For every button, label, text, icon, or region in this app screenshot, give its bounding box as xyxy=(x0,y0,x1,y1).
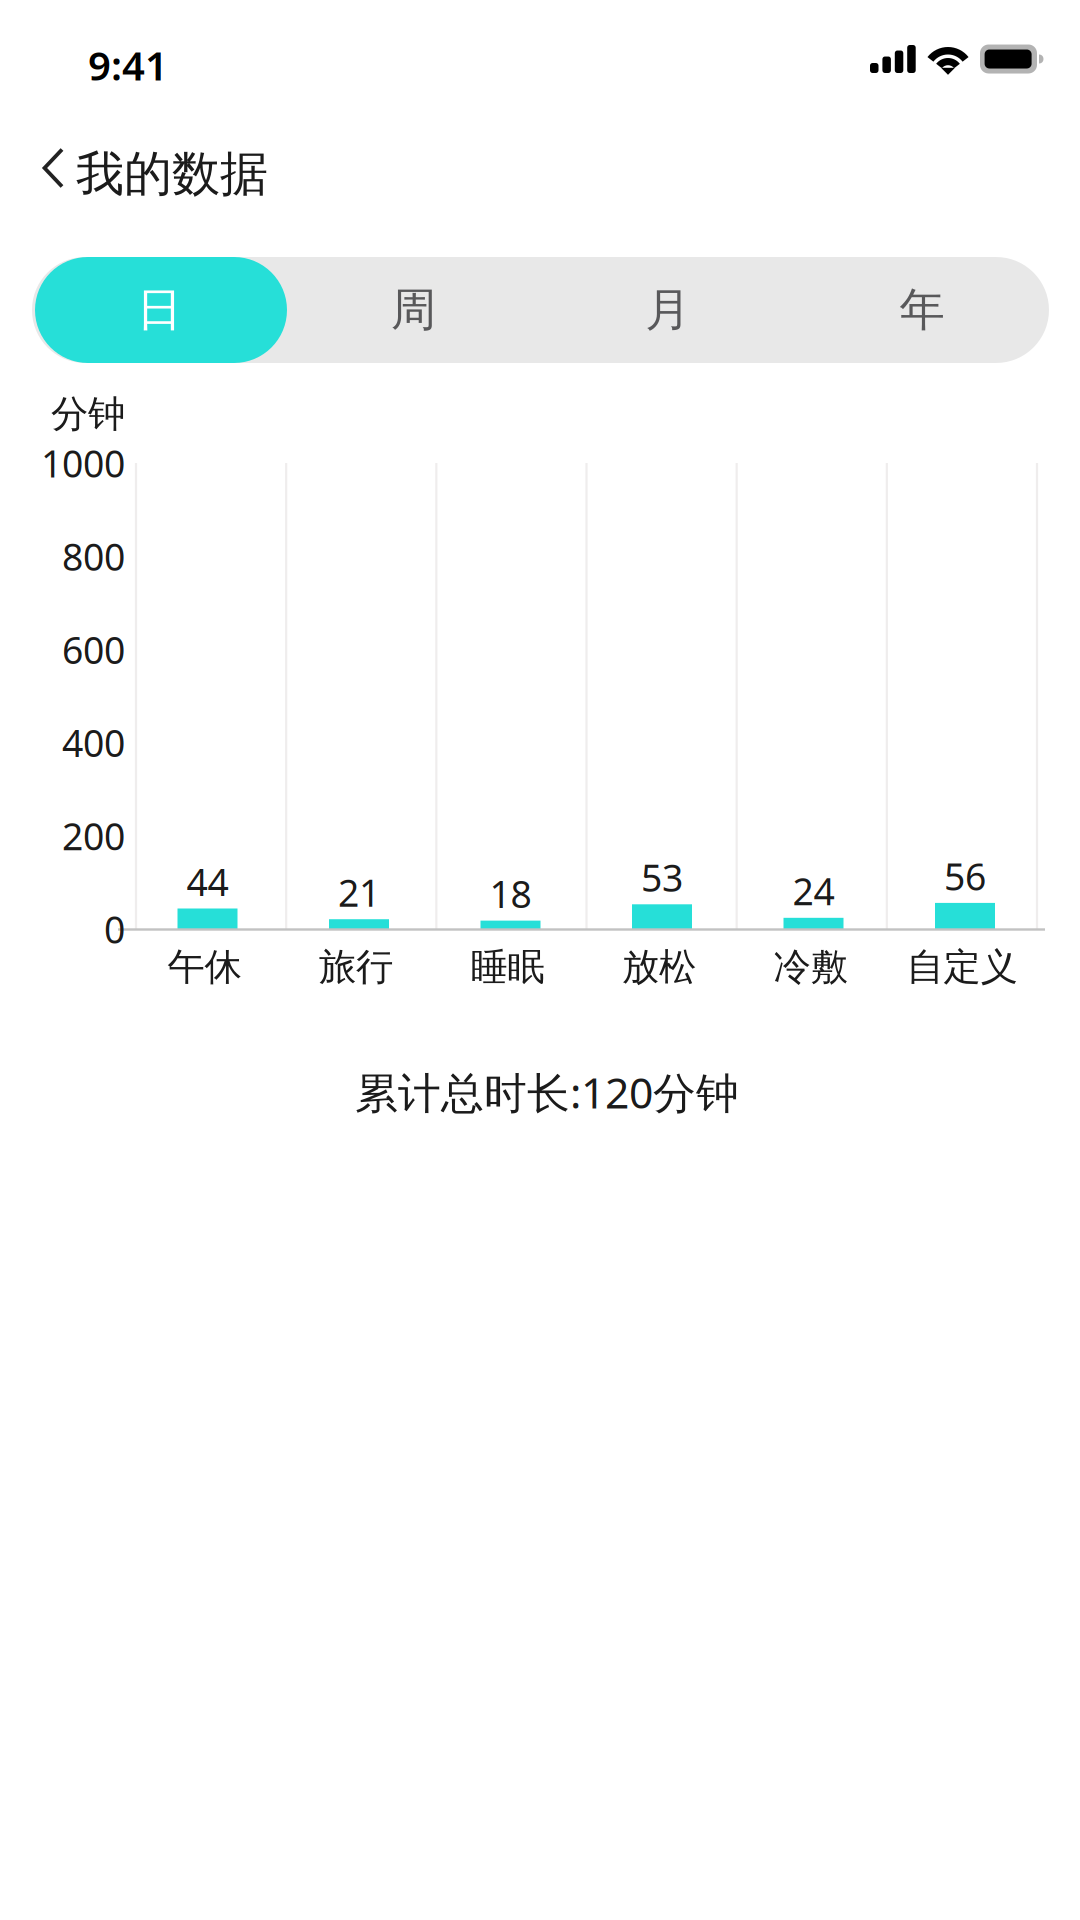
staticText: 1000 xyxy=(41,438,125,488)
staticText: 月 xyxy=(645,282,690,338)
staticText: 9:41 xyxy=(88,38,168,91)
staticText: 周 xyxy=(391,282,436,338)
button[interactable]: 年 xyxy=(795,257,1049,363)
staticText: 800 xyxy=(62,531,125,581)
staticText: 年 xyxy=(899,282,944,338)
staticText: 0 xyxy=(104,904,125,954)
staticText: 56 xyxy=(944,851,986,901)
staticText: 24 xyxy=(792,866,834,916)
staticText: 我的数据 xyxy=(76,144,268,203)
staticText: 分钟 xyxy=(51,391,125,437)
staticText: 600 xyxy=(62,625,125,674)
staticText: 累计总时长:120分钟 xyxy=(355,1064,739,1120)
staticText: 400 xyxy=(62,718,125,767)
staticText: 冷敷 xyxy=(773,944,847,990)
staticText: 18 xyxy=(489,869,531,918)
staticText: 200 xyxy=(62,811,125,861)
staticText: 睡眠 xyxy=(470,944,544,990)
staticText: 放松 xyxy=(622,944,696,990)
button[interactable]: 月 xyxy=(540,257,795,363)
staticText: 旅行 xyxy=(319,944,393,990)
staticText: 53 xyxy=(641,852,683,902)
staticText: 21 xyxy=(338,867,380,917)
button[interactable]: 日 xyxy=(32,257,286,363)
button[interactable]: 我的数据 xyxy=(0,118,297,210)
staticText: 自定义 xyxy=(906,944,1017,990)
staticText: 日 xyxy=(137,282,182,338)
staticText: 午休 xyxy=(167,944,241,990)
button[interactable]: 周 xyxy=(286,257,540,363)
staticText: 44 xyxy=(186,857,228,906)
